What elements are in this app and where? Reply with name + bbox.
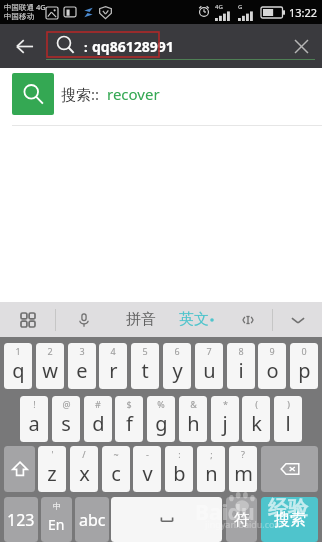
staticText: o: [266, 357, 279, 384]
staticText: k: [251, 410, 262, 437]
staticText: b: [173, 460, 186, 487]
button[interactable]: Shift: [4, 446, 35, 492]
staticText: p: [298, 357, 311, 384]
button[interactable]: Back: [4, 24, 44, 68]
staticText: 搜索: [274, 510, 306, 530]
staticText: e: [76, 357, 88, 384]
staticText: (: [255, 398, 258, 410]
button[interactable]: 7: [195, 343, 223, 389]
staticText: t: [141, 357, 149, 384]
staticText: qq86128991: [92, 37, 174, 56]
staticText: q: [12, 357, 25, 384]
button[interactable]: Voice input: [56, 302, 111, 337]
staticText: jingyan.baidu.com: [205, 518, 283, 530]
staticText: 1: [15, 345, 21, 357]
staticText: 9: [269, 345, 275, 357]
staticText: !: [33, 398, 36, 410]
staticText: r: [109, 357, 118, 384]
staticText: g: [155, 410, 168, 437]
button[interactable]: *: [211, 396, 239, 442]
button[interactable]: 123: [4, 497, 38, 542]
button[interactable]: Keyboard layouts: [0, 302, 55, 337]
button[interactable]: 8: [227, 343, 255, 389]
button[interactable]: /: [70, 446, 98, 492]
staticText: ?: [241, 448, 245, 460]
button[interactable]: 0: [290, 343, 318, 389]
button[interactable]: 英文: [169, 302, 224, 337]
staticText: 13:22: [289, 5, 318, 20]
staticText: #: [95, 398, 101, 410]
staticText: 搜索::: [61, 84, 100, 104]
button[interactable]: @: [52, 396, 80, 442]
staticText: 6: [174, 345, 180, 357]
staticText: a: [28, 410, 40, 437]
button[interactable]: 符: [226, 497, 257, 542]
button[interactable]: ~: [102, 446, 130, 492]
staticText: -: [146, 448, 149, 460]
button[interactable]: (: [242, 396, 270, 442]
button[interactable]: Space: [111, 497, 222, 542]
staticText: u: [203, 357, 216, 384]
button[interactable]: 2: [36, 343, 64, 389]
staticText: 拼音: [126, 310, 156, 329]
button[interactable]: %: [147, 396, 175, 442]
staticText: v: [142, 460, 153, 487]
button[interactable]: Clear: [280, 24, 322, 68]
staticText: @: [62, 398, 71, 410]
staticText: f: [126, 410, 133, 437]
staticText: 4G: [215, 3, 223, 11]
staticText: /: [82, 448, 86, 460]
button[interactable]: Backspace: [261, 446, 318, 492]
staticText: 7: [206, 345, 212, 357]
button[interactable]: $: [115, 396, 143, 442]
button[interactable]: 拼音: [112, 302, 169, 337]
button[interactable]: abc: [75, 497, 109, 542]
staticText: z: [47, 460, 57, 487]
button[interactable]: 3: [68, 343, 96, 389]
staticText: :: [84, 38, 88, 56]
button[interactable]: ?: [229, 446, 257, 492]
staticText: 2: [47, 345, 53, 357]
staticText: n: [205, 460, 218, 487]
button[interactable]: #: [84, 396, 112, 442]
button[interactable]: Hide keyboard: [273, 302, 322, 337]
staticText: x: [79, 460, 90, 487]
staticText: 0: [301, 345, 307, 357]
button[interactable]: :: [165, 446, 193, 492]
button[interactable]: 搜索: [261, 497, 318, 542]
staticText: 3: [79, 345, 85, 357]
staticText: 英文: [179, 310, 209, 329]
staticText: :: [178, 448, 181, 460]
staticText: 中: [53, 501, 61, 511]
staticText: d: [92, 410, 105, 437]
button[interactable]: !: [20, 396, 48, 442]
staticText: 8: [238, 345, 244, 357]
button[interactable]: 搜索::: [0, 68, 322, 126]
button[interactable]: 4: [99, 343, 127, 389]
staticText: w: [42, 357, 58, 384]
staticText: i: [238, 357, 244, 384]
staticText: ;: [210, 448, 213, 460]
button[interactable]: ': [38, 446, 66, 492]
button[interactable]: &: [179, 396, 207, 442]
staticText: En: [48, 515, 65, 534]
staticText: abc: [79, 509, 106, 531]
staticText: 123: [7, 509, 35, 531]
staticText: l: [285, 410, 291, 437]
button[interactable]: ): [274, 396, 302, 442]
button[interactable]: 6: [163, 343, 191, 389]
button[interactable]: ;: [197, 446, 225, 492]
button[interactable]: -: [133, 446, 161, 492]
staticText: j: [222, 410, 228, 437]
staticText: 4: [110, 345, 116, 357]
staticText: ': [51, 448, 54, 460]
staticText: *: [223, 398, 228, 410]
button[interactable]: 中: [41, 497, 72, 542]
staticText: ~: [113, 448, 119, 460]
button[interactable]: 5: [131, 343, 159, 389]
button[interactable]: 9: [258, 343, 286, 389]
button[interactable]: Move cursor: [224, 302, 272, 337]
staticText: h: [187, 410, 200, 437]
button[interactable]: 1: [4, 343, 32, 389]
staticText: s: [61, 410, 71, 437]
